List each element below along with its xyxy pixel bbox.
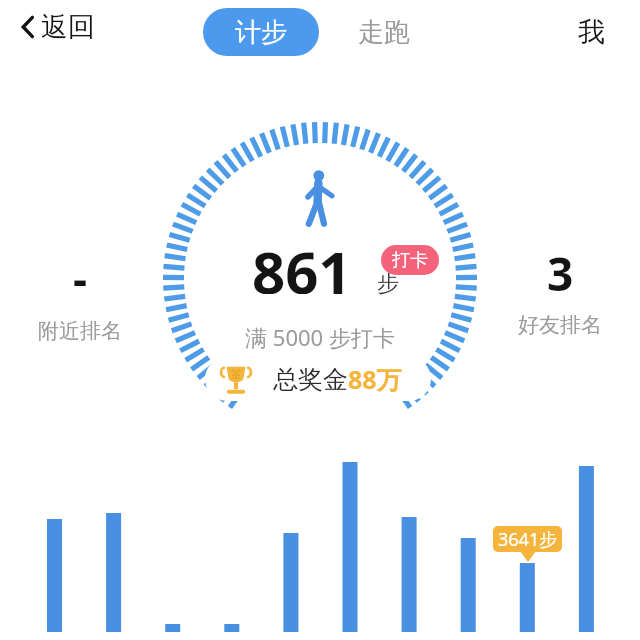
staticText: -	[73, 248, 88, 304]
button[interactable]: 返回	[14, 6, 99, 48]
staticText: 打卡	[392, 249, 428, 272]
staticText: 3	[547, 242, 574, 302]
button[interactable]: 我	[560, 8, 622, 56]
staticText: 走跑	[358, 16, 410, 49]
button[interactable]: 3	[500, 242, 620, 360]
staticText: 我	[578, 15, 605, 49]
staticText: 附近排名	[38, 318, 122, 344]
staticText: 步	[377, 270, 399, 298]
button[interactable]: 3641步	[493, 526, 562, 552]
button[interactable]: 走跑	[340, 8, 428, 56]
staticText: 返回	[41, 10, 95, 44]
button[interactable]: 计步	[203, 8, 319, 56]
staticText: 总奖金	[273, 364, 348, 395]
staticText: 3641步	[498, 527, 558, 552]
button[interactable]: 打卡	[381, 245, 439, 275]
staticText: 88万	[348, 362, 402, 396]
other: Steps	[300, 170, 340, 226]
staticText: 8619	[252, 232, 384, 294]
staticText: 满 5000 步打卡	[245, 322, 395, 352]
staticText: 好友排名	[518, 312, 602, 338]
button[interactable]: -	[20, 248, 140, 360]
button[interactable]: 总奖金	[205, 357, 431, 401]
staticText: 计步	[235, 16, 287, 49]
